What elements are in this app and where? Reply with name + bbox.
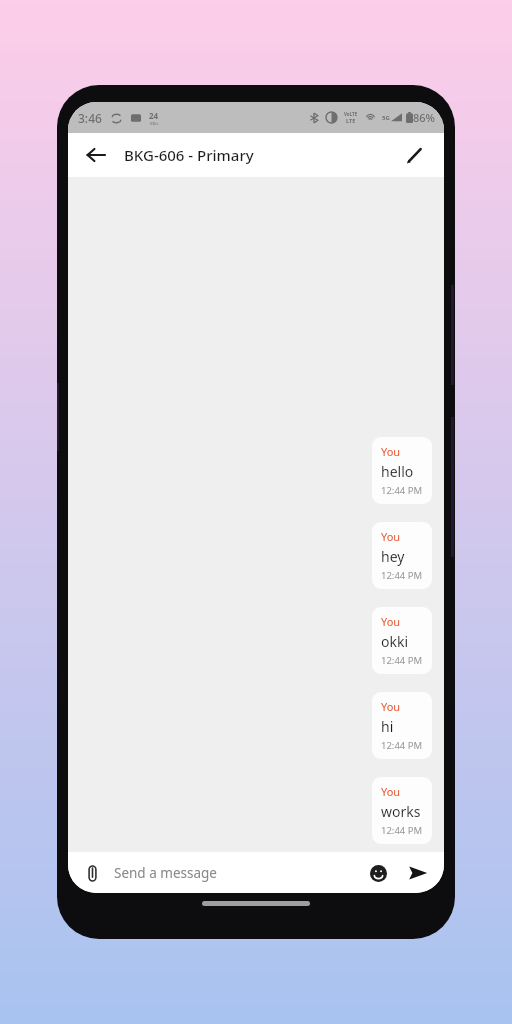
staticText: BKG-606 - Primary <box>124 145 254 165</box>
staticText: VoLTE <box>344 111 358 117</box>
staticText: KB/s <box>150 121 159 126</box>
button[interactable]: Edit <box>394 135 434 175</box>
staticText: You <box>381 784 401 799</box>
staticText: works <box>381 802 421 821</box>
button[interactable]: You <box>372 692 432 759</box>
button[interactable]: You <box>372 607 432 674</box>
staticText: 12:44 PM <box>381 824 423 837</box>
button[interactable]: Emoji <box>360 855 396 891</box>
staticText: 12:44 PM <box>381 569 423 582</box>
staticText: LTE <box>346 117 356 124</box>
button[interactable]: Back <box>76 135 116 175</box>
staticText: 12:44 PM <box>381 484 423 497</box>
button[interactable]: Attach <box>74 855 110 891</box>
staticText: 12:44 PM <box>381 739 423 752</box>
staticText: 5G <box>382 114 390 122</box>
staticText: Send a message <box>114 864 217 882</box>
staticText: You <box>381 529 401 544</box>
button[interactable]: Send <box>400 855 436 891</box>
button[interactable]: You <box>372 437 432 504</box>
staticText: hi <box>381 717 394 736</box>
button[interactable]: You <box>372 522 432 589</box>
staticText: 12:44 PM <box>381 654 423 667</box>
staticText: 86% <box>413 110 435 125</box>
staticText: You <box>381 444 401 459</box>
staticText: hello <box>381 462 414 481</box>
staticText: You <box>381 699 401 714</box>
staticText: 3:46 <box>78 110 102 126</box>
staticText: okki <box>381 632 409 651</box>
staticText: You <box>381 614 401 629</box>
button[interactable]: You <box>372 777 432 844</box>
staticText: hey <box>381 547 405 566</box>
staticText: 24 <box>149 110 159 121</box>
